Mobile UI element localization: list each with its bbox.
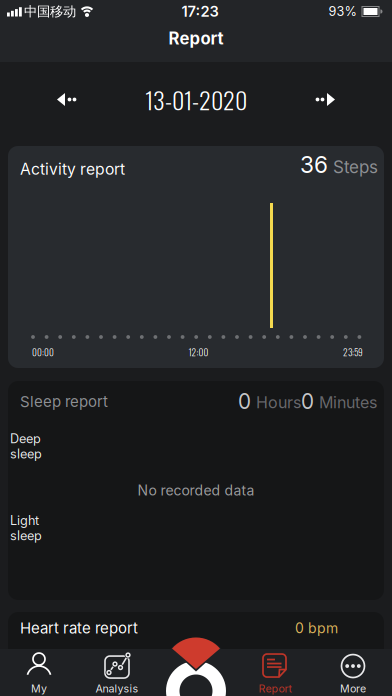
staticText: Analysis [95, 682, 138, 695]
button[interactable]: Report [236, 649, 314, 695]
staticText: 中国移动 [24, 3, 76, 20]
button[interactable]: Next day [305, 83, 347, 116]
staticText: Minutes [314, 393, 377, 412]
staticText: 0 bpm [295, 620, 338, 636]
staticText: 13-01-2020 [145, 82, 247, 117]
staticText: Steps [328, 157, 378, 177]
staticText: Report [258, 682, 291, 695]
staticText: Light sleep [10, 513, 42, 543]
staticText: My [31, 682, 47, 695]
button[interactable]: Home [164, 636, 228, 696]
button[interactable]: More [314, 649, 392, 695]
staticText: 17:23 [181, 3, 218, 20]
staticText: Activity report [20, 159, 125, 178]
button[interactable]: 13-01-2020 [145, 82, 247, 117]
staticText: 0 [301, 389, 314, 414]
staticText: 0 [238, 389, 251, 414]
staticText: 36 [300, 151, 328, 178]
staticText: 00:00 [32, 345, 54, 359]
staticText: 93% [328, 4, 356, 19]
button[interactable]: Previous day [45, 83, 87, 116]
staticText: Heart rate report [20, 619, 138, 637]
staticText: No recorded data [137, 482, 254, 499]
staticText: Report [168, 28, 223, 49]
staticText: Hours [251, 393, 301, 412]
staticText: 12:00 [188, 345, 208, 359]
staticText: Sleep report [20, 392, 108, 410]
staticText: More [340, 682, 366, 695]
staticText: Deep sleep [10, 431, 42, 462]
button[interactable]: My [0, 649, 78, 695]
staticText: 23:59 [343, 345, 363, 359]
button[interactable]: Analysis [78, 649, 156, 695]
